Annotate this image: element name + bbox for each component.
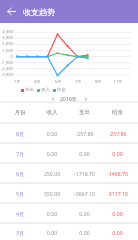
staticText: 支出: [25, 87, 34, 93]
staticText: 550.00: [36, 190, 68, 197]
button[interactable]: 3月: [0, 224, 138, 240]
button[interactable]: 月份: [0, 103, 138, 122]
staticText: -257.86: [68, 130, 101, 137]
staticText: 0.00: [68, 150, 101, 157]
staticText: 0.00: [36, 210, 68, 217]
staticText: -3,000: [0, 72, 13, 78]
staticText: -3667.10: [68, 190, 101, 197]
staticText: 收支趋势: [23, 7, 55, 17]
staticText: 11月: [110, 79, 126, 85]
staticText: 1,000: [0, 48, 13, 54]
staticText: 7月: [70, 79, 86, 85]
staticText: 支出: [68, 109, 101, 116]
button[interactable]: 8月: [0, 124, 138, 142]
staticText: 7月: [4, 150, 36, 157]
staticText: -1468.70: [101, 170, 134, 177]
button[interactable]: Previous year: [48, 94, 57, 103]
staticText: 0.00: [68, 229, 101, 236]
staticText: 8月: [4, 130, 36, 137]
staticText: 1月: [9, 79, 25, 85]
staticText: 2016年: [60, 95, 78, 102]
button[interactable]: 7月: [0, 144, 138, 162]
staticText: 0.00: [36, 130, 68, 137]
staticText: 月份: [4, 109, 36, 116]
button[interactable]: Next year: [81, 94, 90, 103]
button[interactable]: 5月: [0, 184, 138, 202]
staticText: 0: [0, 54, 13, 60]
staticText: 250.00: [36, 170, 68, 177]
staticText: 4,000: [0, 29, 13, 35]
staticText: 2,000: [0, 41, 13, 47]
staticText: 结余: [101, 109, 134, 116]
staticText: -2,000: [0, 66, 13, 72]
staticText: 0.00: [68, 210, 101, 217]
staticText: -1,000: [0, 60, 13, 66]
staticText: 5月: [4, 190, 36, 197]
staticText: -3117.10: [101, 190, 134, 197]
staticText: 0.00: [36, 229, 68, 236]
staticText: 9月: [90, 79, 106, 85]
staticText: 0.00: [101, 210, 134, 217]
staticText: 4月: [4, 210, 36, 217]
staticText: 5月: [50, 79, 66, 85]
staticText: 0.00: [36, 150, 68, 157]
staticText: 收入: [41, 87, 50, 93]
staticText: 0.00: [101, 150, 134, 157]
button[interactable]: 6月: [0, 164, 138, 182]
staticText: -257.86: [101, 130, 134, 137]
staticText: -1718.70: [68, 170, 101, 177]
staticText: 收入: [36, 109, 68, 116]
staticText: 3,000: [0, 35, 13, 41]
button[interactable]: Back: [0, 0, 23, 23]
button[interactable]: 4月: [0, 204, 138, 222]
staticText: 3月: [29, 79, 45, 85]
staticText: 6月: [4, 170, 36, 177]
staticText: 0.00: [101, 229, 134, 236]
staticText: 3月: [4, 229, 36, 236]
staticText: 结余: [57, 87, 66, 93]
